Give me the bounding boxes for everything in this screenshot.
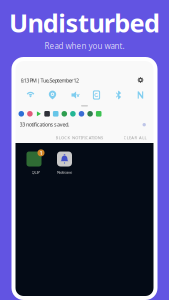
staticText: BLOCK NOTIFICATIONS [55,135,103,140]
button[interactable]: CLEAR ALL [123,135,146,140]
button[interactable]: NFC [129,90,151,100]
button[interactable]: Bluetooth [107,90,129,100]
staticText: Read when you want. [44,40,124,51]
staticText: Notisave [57,169,72,175]
button[interactable]: Notisave [55,151,73,175]
button[interactable]: Wi-Fi [19,90,41,100]
button[interactable]: BLOCK NOTIFICATIONS [55,135,103,140]
staticText: 1 [39,149,42,156]
button[interactable]: Mute [63,90,85,100]
button[interactable]: Location [41,90,63,100]
staticText: CLEAR ALL [123,135,146,140]
staticText: QLIP [31,169,39,175]
staticText: 6:13 PM | Tue, September 12 [20,77,79,84]
button[interactable]: Settings [134,74,146,86]
staticText: Undisturbed [9,6,160,39]
button[interactable]: 1 [26,151,44,175]
button[interactable]: Auto rotate [85,90,107,100]
staticText: 33 notifications saved. [19,121,69,128]
